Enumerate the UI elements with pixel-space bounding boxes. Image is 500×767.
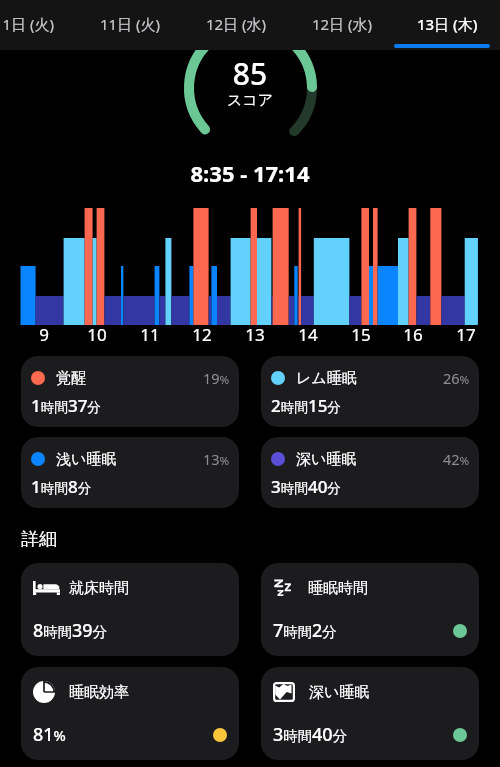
staticText: 42% xyxy=(443,449,470,469)
staticText: 16 xyxy=(393,323,433,346)
staticText: 81% xyxy=(33,722,66,747)
button[interactable]: 13日 (木) xyxy=(394,0,500,47)
staticText: 11日 (火) xyxy=(0,14,55,34)
staticText: 26% xyxy=(443,368,470,388)
staticText: 3時間40分 xyxy=(271,475,341,498)
staticText: 13 xyxy=(235,323,275,346)
staticText: 12 xyxy=(182,323,222,346)
staticText: 浅い睡眠 xyxy=(56,450,117,469)
staticText: 就床時間 xyxy=(69,579,129,598)
staticText: 11日 (火) xyxy=(100,14,161,34)
staticText: 8時間39分 xyxy=(33,618,108,643)
staticText: 深い睡眠 xyxy=(296,450,357,469)
button[interactable]: 浅い睡眠 xyxy=(21,437,239,508)
staticText: 13% xyxy=(203,449,230,469)
staticText: 覚醒 xyxy=(56,369,86,388)
staticText: スコア xyxy=(0,91,500,110)
button[interactable]: 深い睡眠 xyxy=(261,667,479,760)
staticText: 1時間37分 xyxy=(31,394,101,417)
button[interactable]: 11日 (火) xyxy=(0,0,77,47)
staticText: レム睡眠 xyxy=(296,369,357,388)
button[interactable]: 12日 (水) xyxy=(289,0,395,47)
button[interactable]: 12日 (水) xyxy=(183,0,289,47)
button[interactable]: 11日 (火) xyxy=(77,0,183,47)
staticText: 2時間15分 xyxy=(271,394,341,417)
staticText: 13日 (木) xyxy=(417,14,478,34)
button[interactable]: 睡眠時間 xyxy=(261,563,479,656)
staticText: 17 xyxy=(446,323,486,346)
button[interactable]: 睡眠効率 xyxy=(21,667,239,760)
button[interactable]: 就床時間 xyxy=(21,563,239,656)
staticText: 9 xyxy=(24,323,64,346)
staticText: 1時間8分 xyxy=(31,475,92,498)
staticText: 15 xyxy=(341,323,381,346)
staticText: 7時間2分 xyxy=(273,618,337,643)
button[interactable]: レム睡眠 xyxy=(261,356,479,427)
staticText: 12日 (水) xyxy=(312,14,373,34)
staticText: 3時間40分 xyxy=(273,722,348,747)
staticText: 深い睡眠 xyxy=(309,683,370,702)
staticText: 睡眠時間 xyxy=(308,579,368,598)
button[interactable]: 深い睡眠 xyxy=(261,437,479,508)
staticText: 19% xyxy=(203,368,230,388)
staticText: 睡眠効率 xyxy=(69,683,129,702)
staticText: 10 xyxy=(77,323,117,346)
staticText: 11 xyxy=(130,323,170,346)
staticText: 詳細 xyxy=(21,528,57,551)
staticText: 12日 (水) xyxy=(206,14,267,34)
staticText: 85 xyxy=(0,53,500,94)
button[interactable]: 覚醒 xyxy=(21,356,239,427)
staticText: 14 xyxy=(288,323,328,346)
staticText: 8:35 - 17:14 xyxy=(0,158,500,188)
